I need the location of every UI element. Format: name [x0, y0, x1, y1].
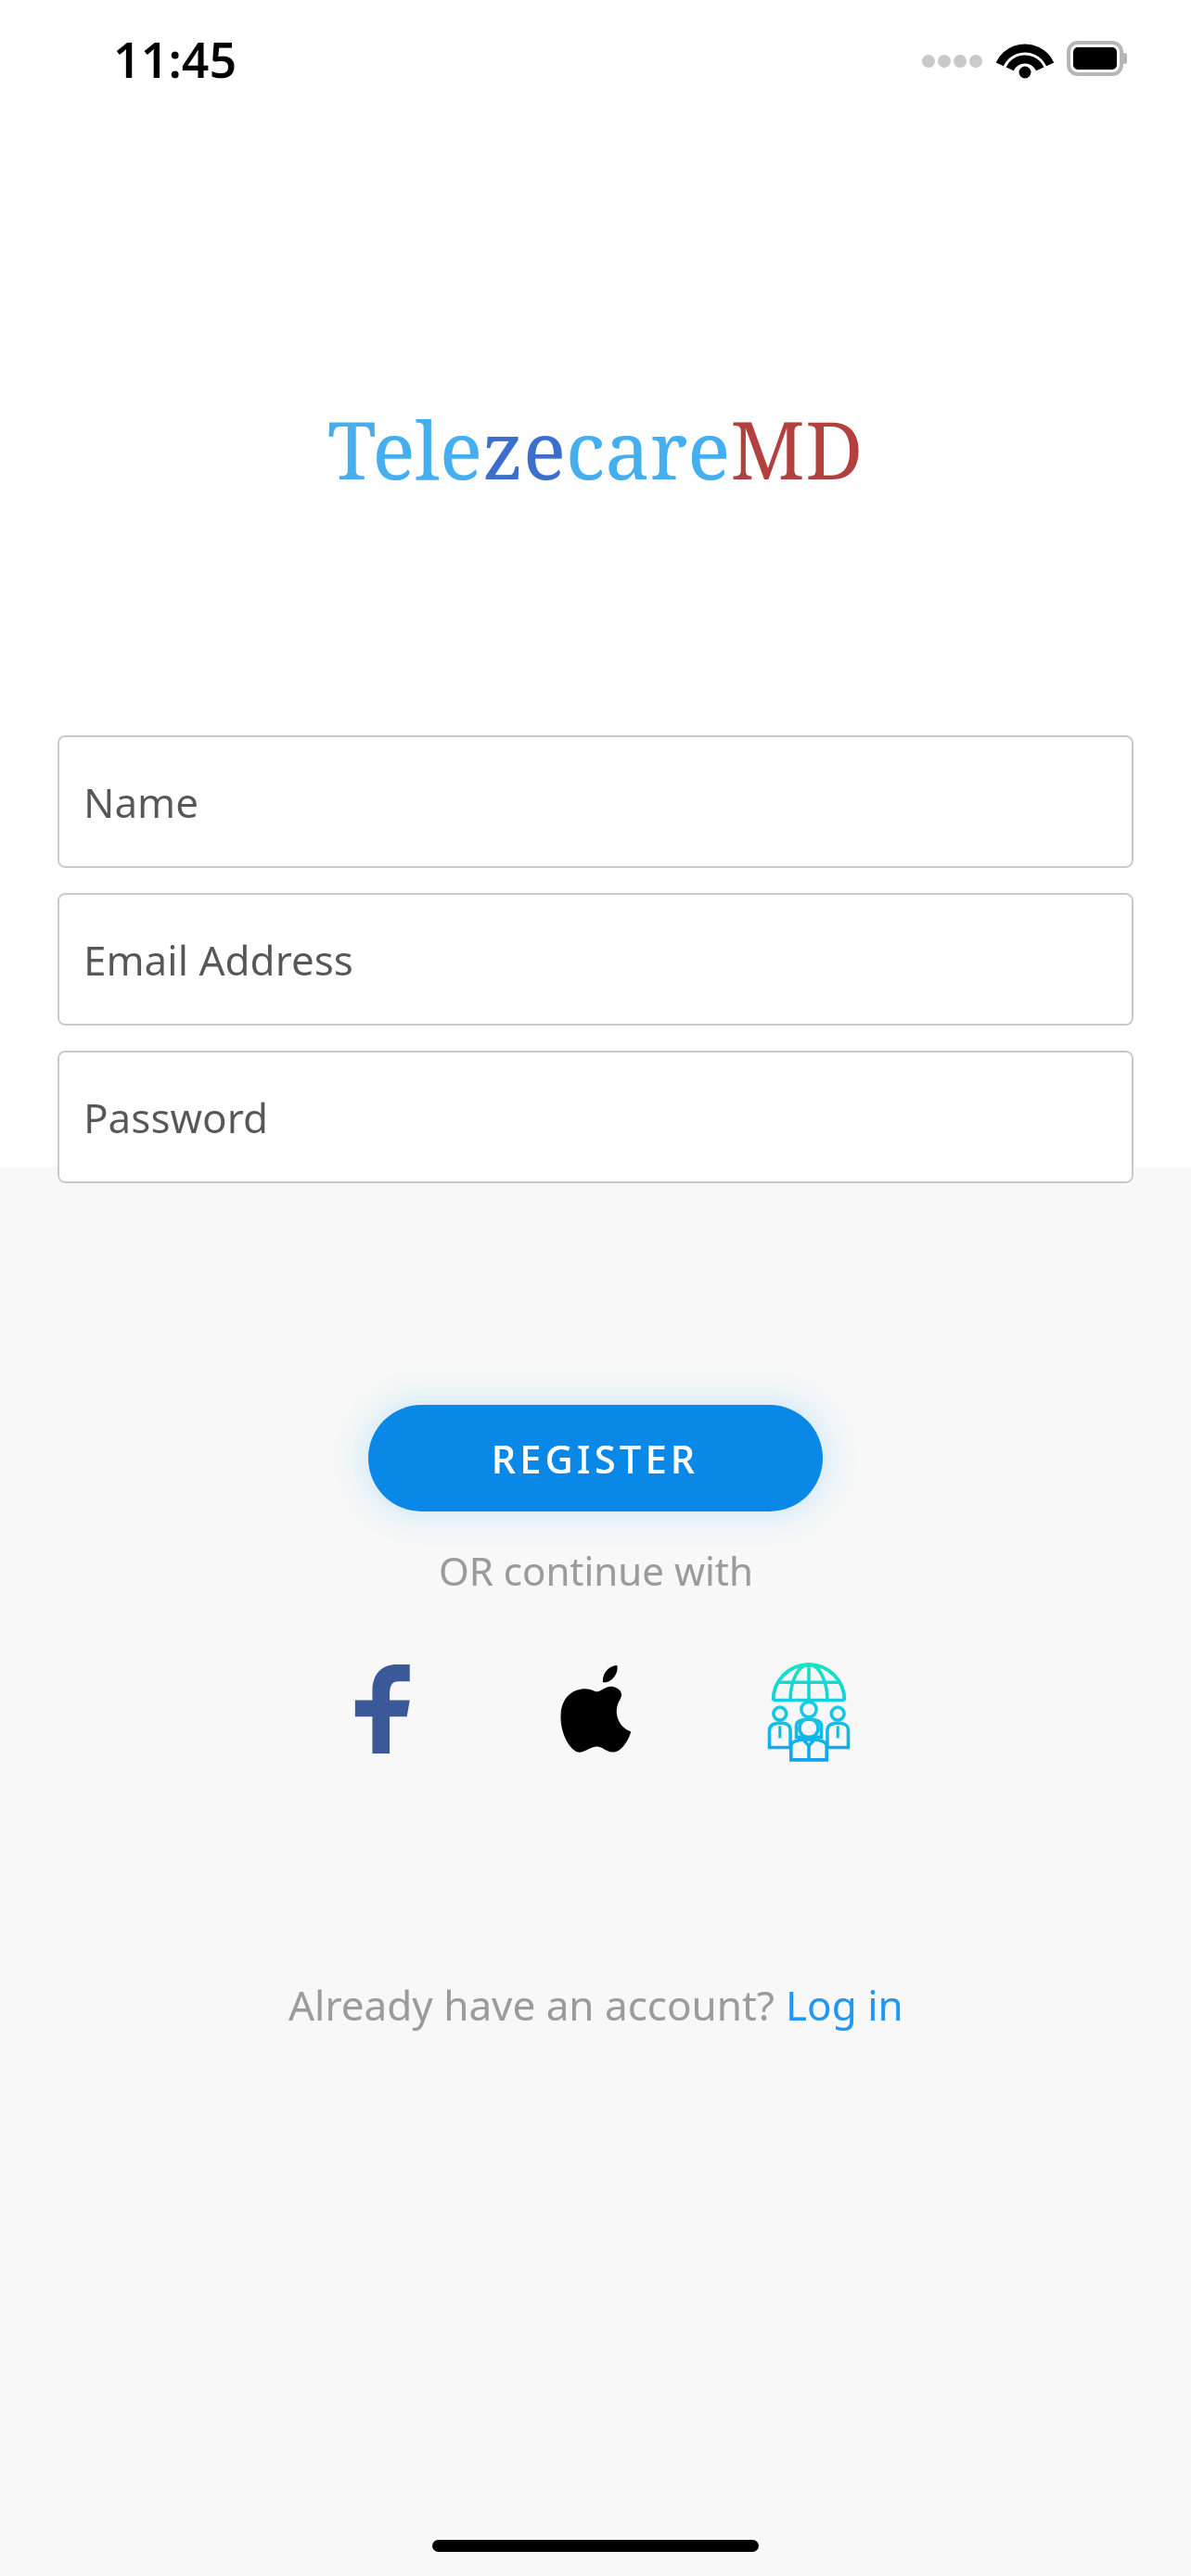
button[interactable]: REGISTER [368, 1405, 823, 1511]
staticText: Log in [786, 1977, 903, 2033]
staticText: TelezecareMD [327, 394, 864, 503]
button[interactable]: Name [58, 735, 1133, 868]
staticText: OR continue with [439, 1544, 753, 1597]
staticText: Password [83, 1090, 269, 1145]
button[interactable]: Log in [786, 1977, 903, 2033]
staticText: Email Address [83, 932, 353, 988]
button[interactable]: Continue with Apple [535, 1649, 656, 1769]
staticText: Already have an account? [288, 1977, 786, 2033]
staticText: Name [83, 774, 199, 830]
button[interactable]: Continue with community account [749, 1649, 869, 1769]
button[interactable]: Password [58, 1051, 1133, 1183]
button[interactable]: Continue with Facebook [322, 1649, 442, 1769]
button[interactable]: Email Address [58, 893, 1133, 1026]
staticText: REGISTER [492, 1433, 699, 1485]
staticText: 11:45 [113, 26, 237, 92]
